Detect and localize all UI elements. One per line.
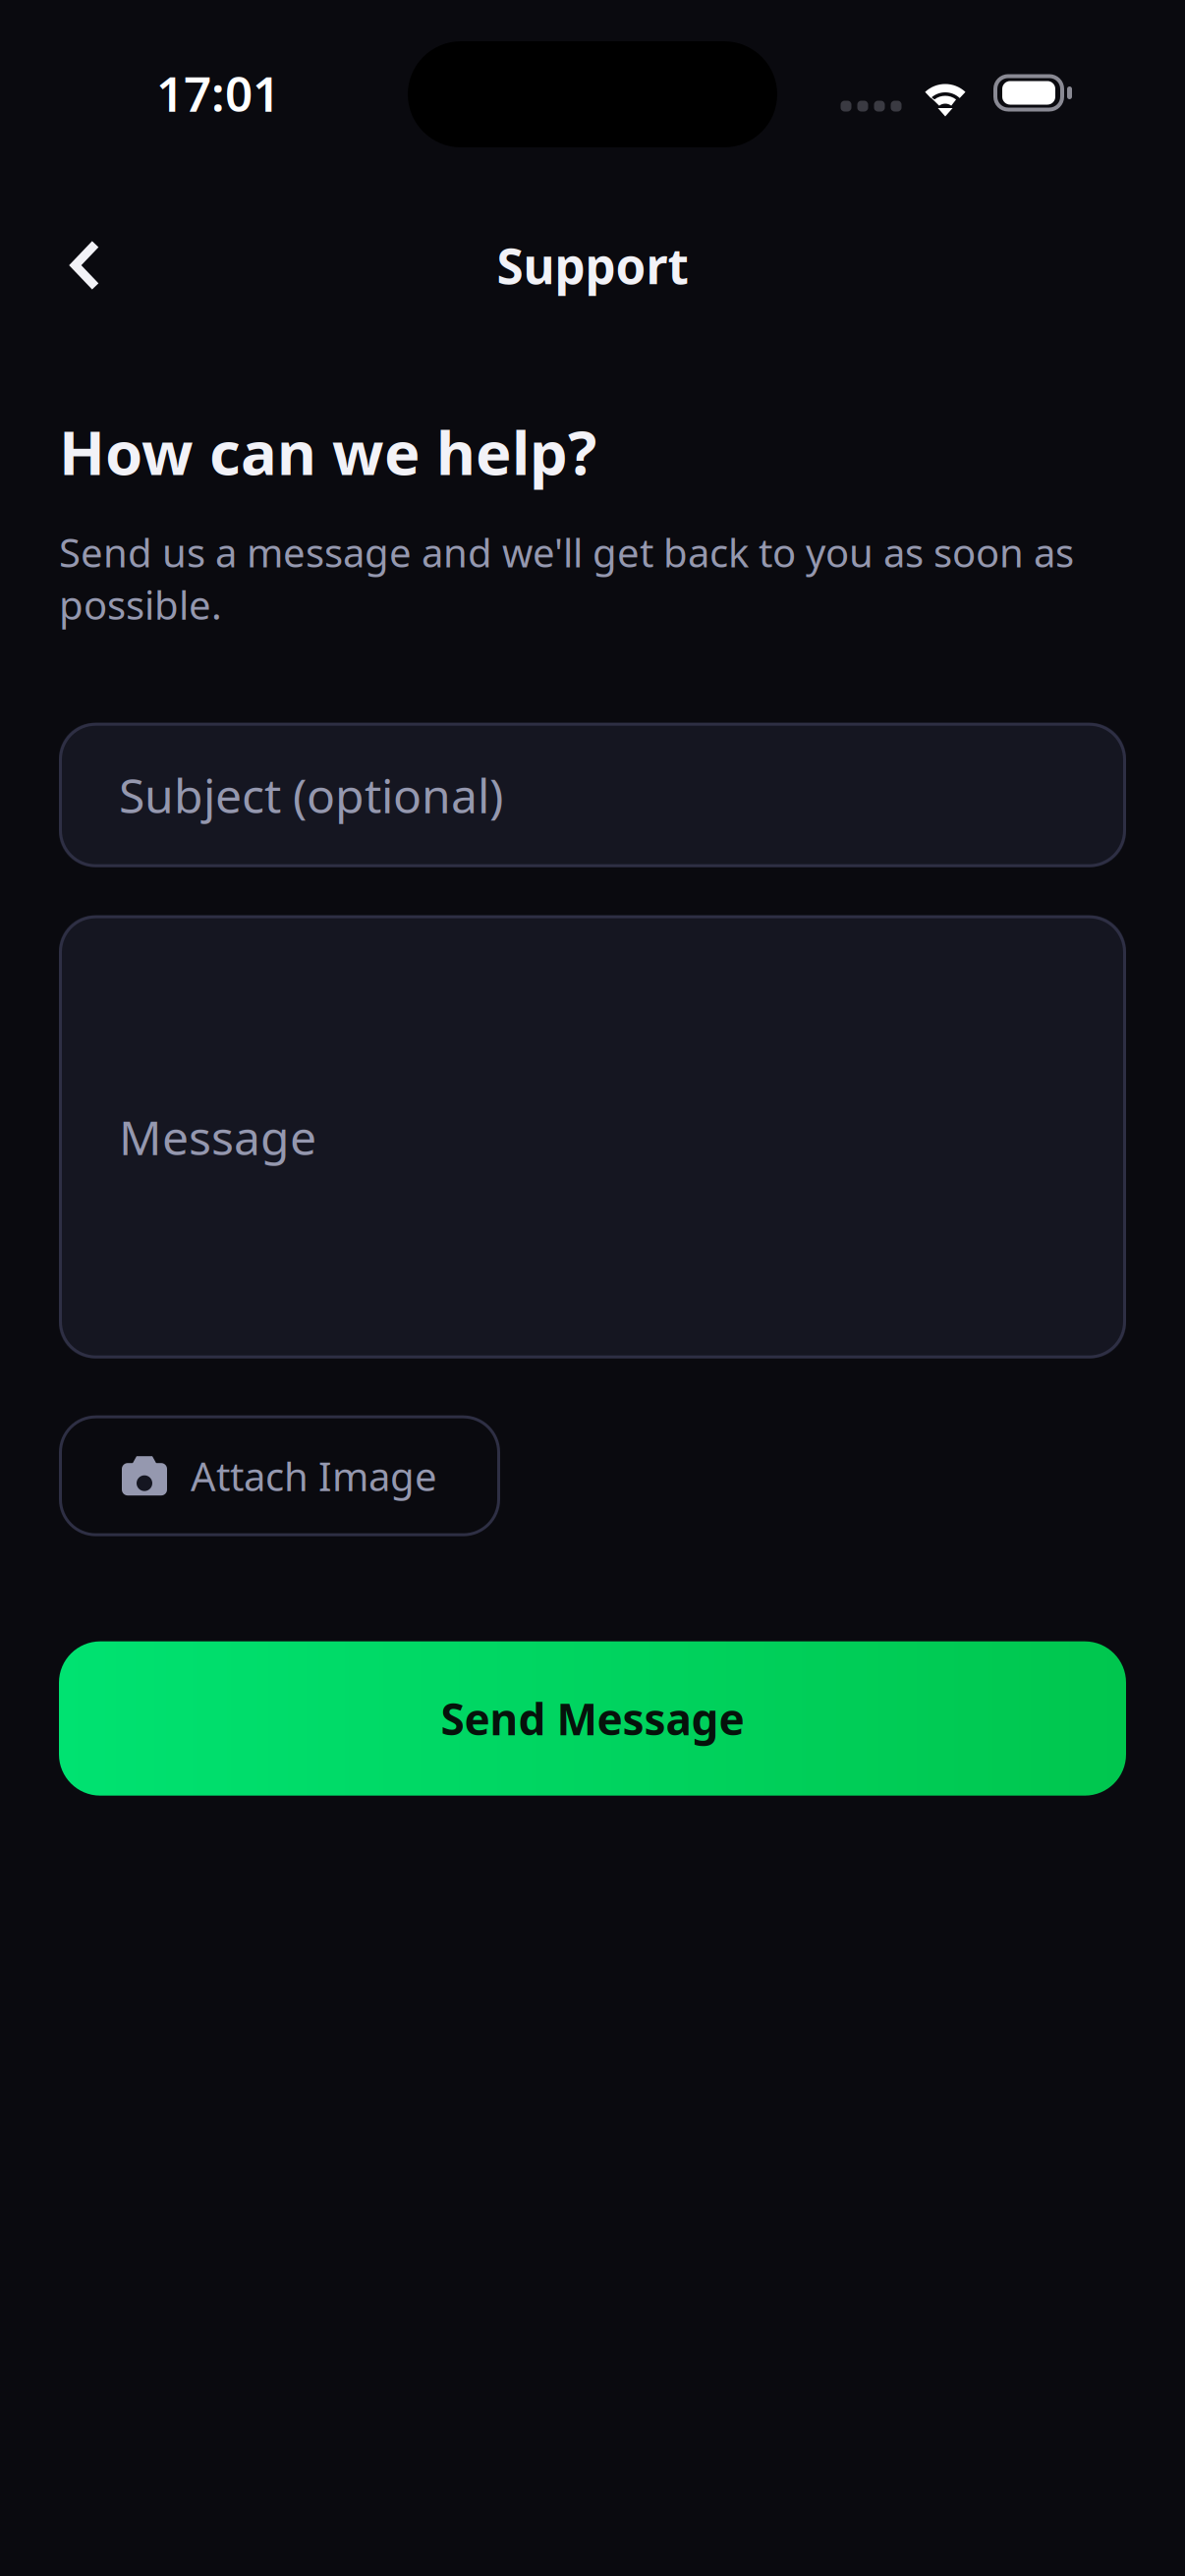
button[interactable]: Subject (optional): [59, 723, 1126, 867]
staticText: How can we help?: [59, 412, 596, 492]
button[interactable]: Back: [36, 216, 135, 314]
staticText: Attach Image: [191, 1450, 437, 1502]
staticText: Subject (optional): [119, 764, 503, 826]
staticText: Send Message: [441, 1690, 744, 1747]
staticText: Support: [497, 233, 688, 297]
staticText: Message: [119, 1106, 316, 1168]
button[interactable]: Attach Image: [59, 1415, 500, 1536]
staticText: 17:01: [156, 61, 280, 125]
staticText: Send us a message and we'll get back to …: [59, 526, 1074, 630]
button[interactable]: Message: [59, 915, 1126, 1358]
button[interactable]: Send Message: [59, 1641, 1126, 1796]
